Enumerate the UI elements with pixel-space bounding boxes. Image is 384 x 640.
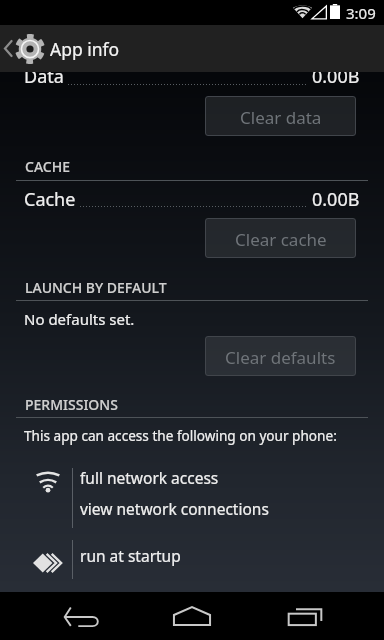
staticText: 0.00B — [312, 64, 360, 89]
button[interactable]: Back — [40, 592, 168, 640]
button[interactable]: Recent apps — [280, 592, 384, 640]
staticText: CACHE — [25, 157, 70, 176]
button[interactable]: Cache — [0, 186, 384, 212]
button[interactable]: Up — [0, 25, 384, 72]
staticText: Data — [24, 64, 64, 89]
button[interactable]: Data — [0, 63, 384, 89]
staticText: PERMISSIONS — [25, 395, 118, 414]
button[interactable]: Clear defaults — [205, 336, 356, 376]
staticText: full network access — [80, 467, 219, 488]
staticText: Clear defaults — [225, 346, 336, 369]
staticText: Cache — [24, 187, 76, 212]
staticText: Clear cache — [235, 228, 327, 251]
staticText: view network connections — [80, 498, 269, 519]
staticText: No defaults set. — [24, 309, 135, 329]
button[interactable]: Home — [168, 592, 280, 640]
button[interactable]: Clear data — [205, 96, 356, 136]
staticText: run at startup — [80, 545, 181, 566]
staticText: Clear data — [240, 106, 322, 129]
staticText: This app can access the following on you… — [24, 426, 337, 445]
staticText: LAUNCH BY DEFAULT — [25, 278, 167, 297]
staticText: 0.00B — [312, 187, 360, 212]
staticText: 3:09 — [346, 3, 376, 23]
staticText: App info — [50, 37, 120, 61]
button[interactable]: Clear cache — [205, 218, 356, 258]
